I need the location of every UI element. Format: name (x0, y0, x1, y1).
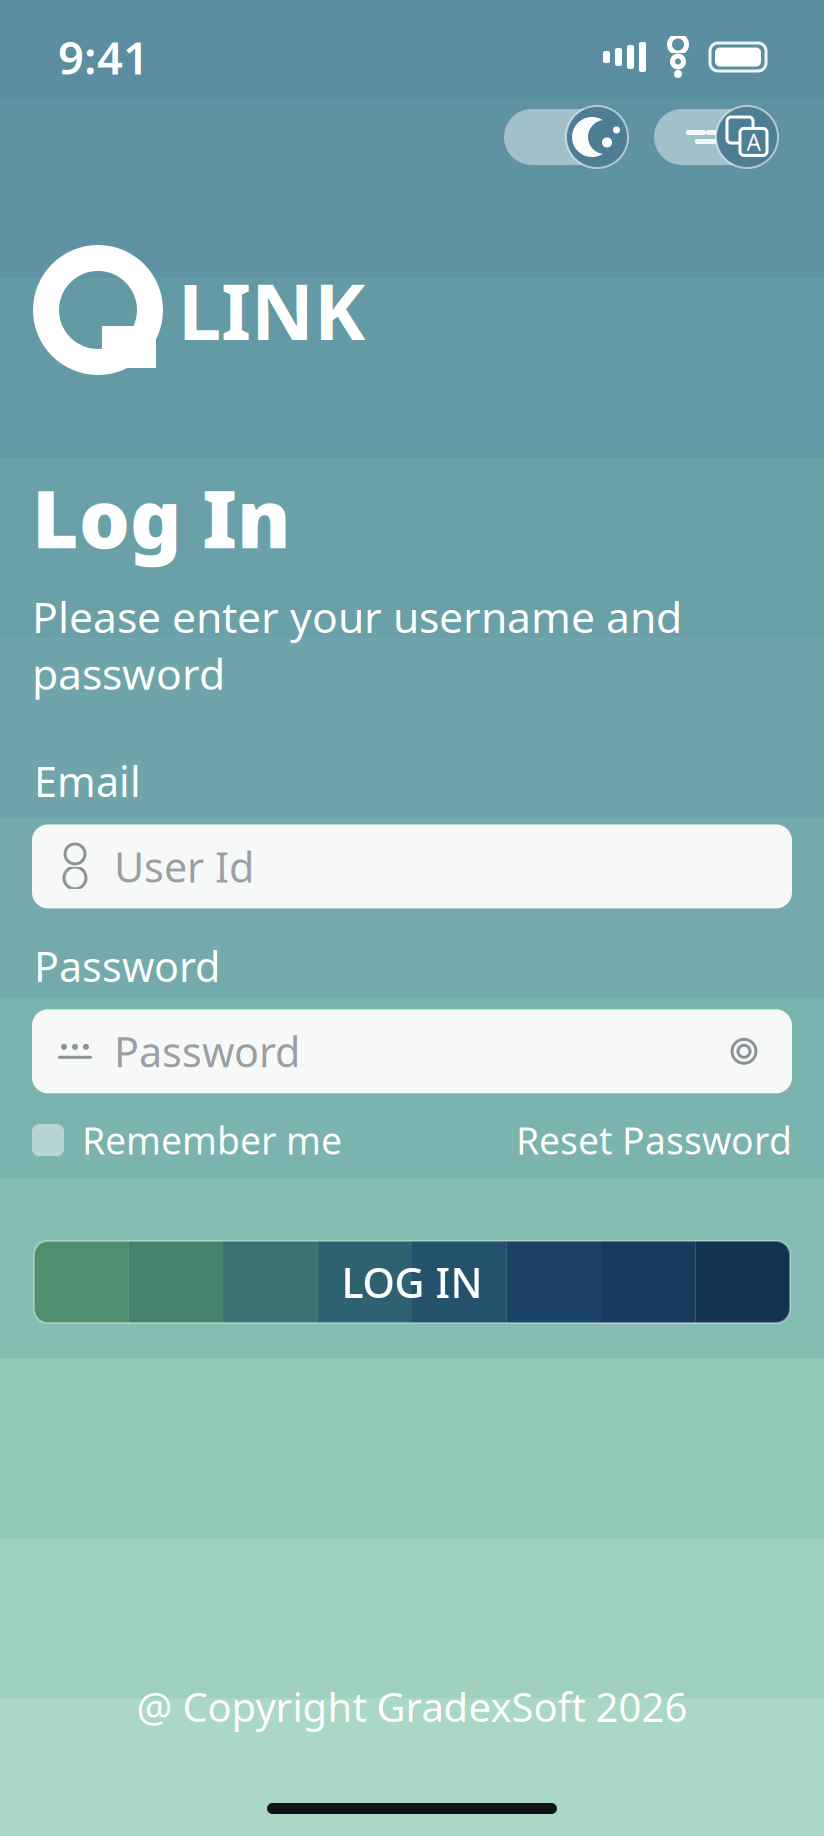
staticText: Remember me (82, 1115, 342, 1165)
button[interactable]: Password (32, 1009, 792, 1093)
staticText: @ Copyright GradexSoft 2026 (136, 1680, 687, 1733)
button[interactable]: Reset Password (516, 1115, 792, 1165)
staticText: LOG IN (341, 1254, 482, 1309)
staticText: Log In (32, 464, 291, 570)
staticText: A (746, 127, 760, 157)
button[interactable]: Toggle dark mode (504, 106, 628, 168)
staticText: Password (34, 938, 220, 993)
button[interactable]: Remember me (32, 1115, 342, 1165)
staticText: 9:41 (58, 27, 149, 87)
staticText: LINK (178, 259, 365, 361)
staticText: Please enter your username and password (32, 588, 682, 701)
button[interactable]: Change language (654, 106, 778, 168)
staticText: Password (114, 1024, 300, 1079)
staticText: User Id (114, 839, 254, 894)
button[interactable]: User Id (32, 824, 792, 908)
button[interactable]: LOG IN (34, 1241, 790, 1323)
staticText: Reset Password (516, 1115, 792, 1165)
staticText: Email (34, 754, 141, 808)
